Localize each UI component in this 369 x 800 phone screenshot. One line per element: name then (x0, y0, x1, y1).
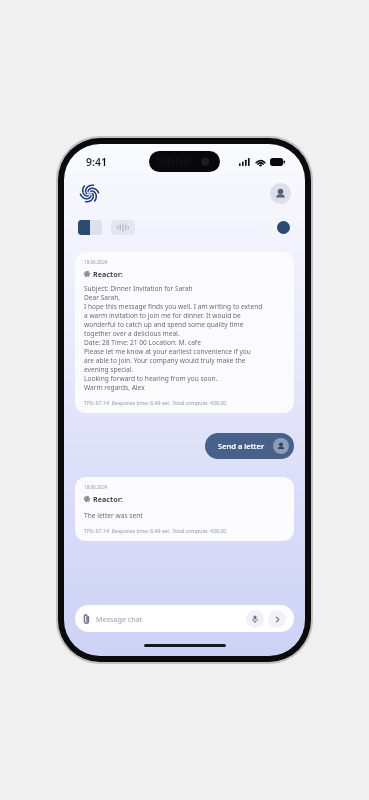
staticText: Reactor: (93, 494, 123, 504)
staticText: a warm invitation to join me for dinner.… (84, 311, 241, 320)
staticText: 9:41 (86, 155, 107, 169)
button[interactable]: Voice waveform (111, 220, 135, 235)
staticText: evening special. (84, 365, 134, 374)
button[interactable]: Toggle (262, 220, 291, 235)
staticText: Message chat (96, 614, 143, 624)
staticText: TPS: 67.14 Response time: 6.49 sec Total… (84, 399, 227, 406)
staticText: Date: 28 Time: 21 00 Location: M. cafe (84, 338, 201, 347)
staticText: Send a letter (218, 441, 265, 451)
staticText: Dear Sarah, (84, 293, 121, 302)
button[interactable]: Send (268, 610, 286, 628)
button[interactable]: Profile (270, 183, 291, 204)
button[interactable]: Send a letter (205, 433, 294, 459)
button[interactable]: Message chat (75, 605, 294, 632)
button[interactable]: Contrast mode (78, 220, 102, 235)
staticText: are able to join. Your company would tru… (84, 356, 246, 365)
button[interactable]: App logo (78, 182, 100, 204)
staticText: Warm regards, Alex (84, 383, 145, 392)
staticText: The letter was sent (84, 511, 143, 520)
button[interactable]: 18.06.2024 (75, 252, 294, 413)
staticText: wonderful to catch up and spend some qua… (84, 320, 244, 329)
staticText: Looking forward to hearing from you soon… (84, 374, 218, 383)
staticText: 18.06.2024 (84, 259, 108, 265)
staticText: together over a delicious meal. (84, 329, 180, 338)
button[interactable]: Voice input (246, 610, 264, 628)
staticText: Reactor: (93, 269, 123, 279)
staticText: I hope this message finds you well. I am… (84, 302, 263, 311)
staticText: TPS: 67.14 Response time: 6.49 sec Total… (84, 527, 227, 534)
staticText: Subject: Dinner Invitation for Sarah (84, 284, 193, 293)
staticText: Please let me know at your earliest conv… (84, 347, 251, 356)
staticText: 18.06.2024 (84, 484, 108, 490)
button[interactable]: 18.06.2024 (75, 477, 294, 541)
